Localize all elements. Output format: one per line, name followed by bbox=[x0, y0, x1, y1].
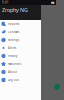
button[interactable]: Settings bbox=[0, 36, 41, 44]
staticText: Contacts bbox=[8, 30, 19, 34]
staticText: Alerts bbox=[8, 46, 16, 50]
staticText: Reports bbox=[8, 22, 19, 26]
staticText: Zrophy NG bbox=[2, 6, 28, 14]
button[interactable]: Reports bbox=[0, 20, 41, 28]
staticText: Log out bbox=[8, 78, 19, 82]
button[interactable]: History bbox=[0, 52, 41, 60]
staticText: 9:41 bbox=[2, 1, 9, 4]
staticText: Settings bbox=[8, 38, 19, 42]
staticText: History bbox=[8, 54, 17, 58]
button[interactable]: Favourites bbox=[0, 60, 41, 68]
button[interactable]: Contacts bbox=[0, 28, 41, 36]
staticText: ▮▮▮ bbox=[51, 1, 54, 4]
staticText: Favourites bbox=[8, 62, 21, 66]
button[interactable]: Log out bbox=[0, 76, 41, 84]
button[interactable]: Compose bbox=[54, 84, 60, 90]
button[interactable]: Alerts bbox=[0, 44, 41, 52]
button[interactable]: About bbox=[0, 68, 41, 76]
staticText: About bbox=[8, 70, 17, 74]
